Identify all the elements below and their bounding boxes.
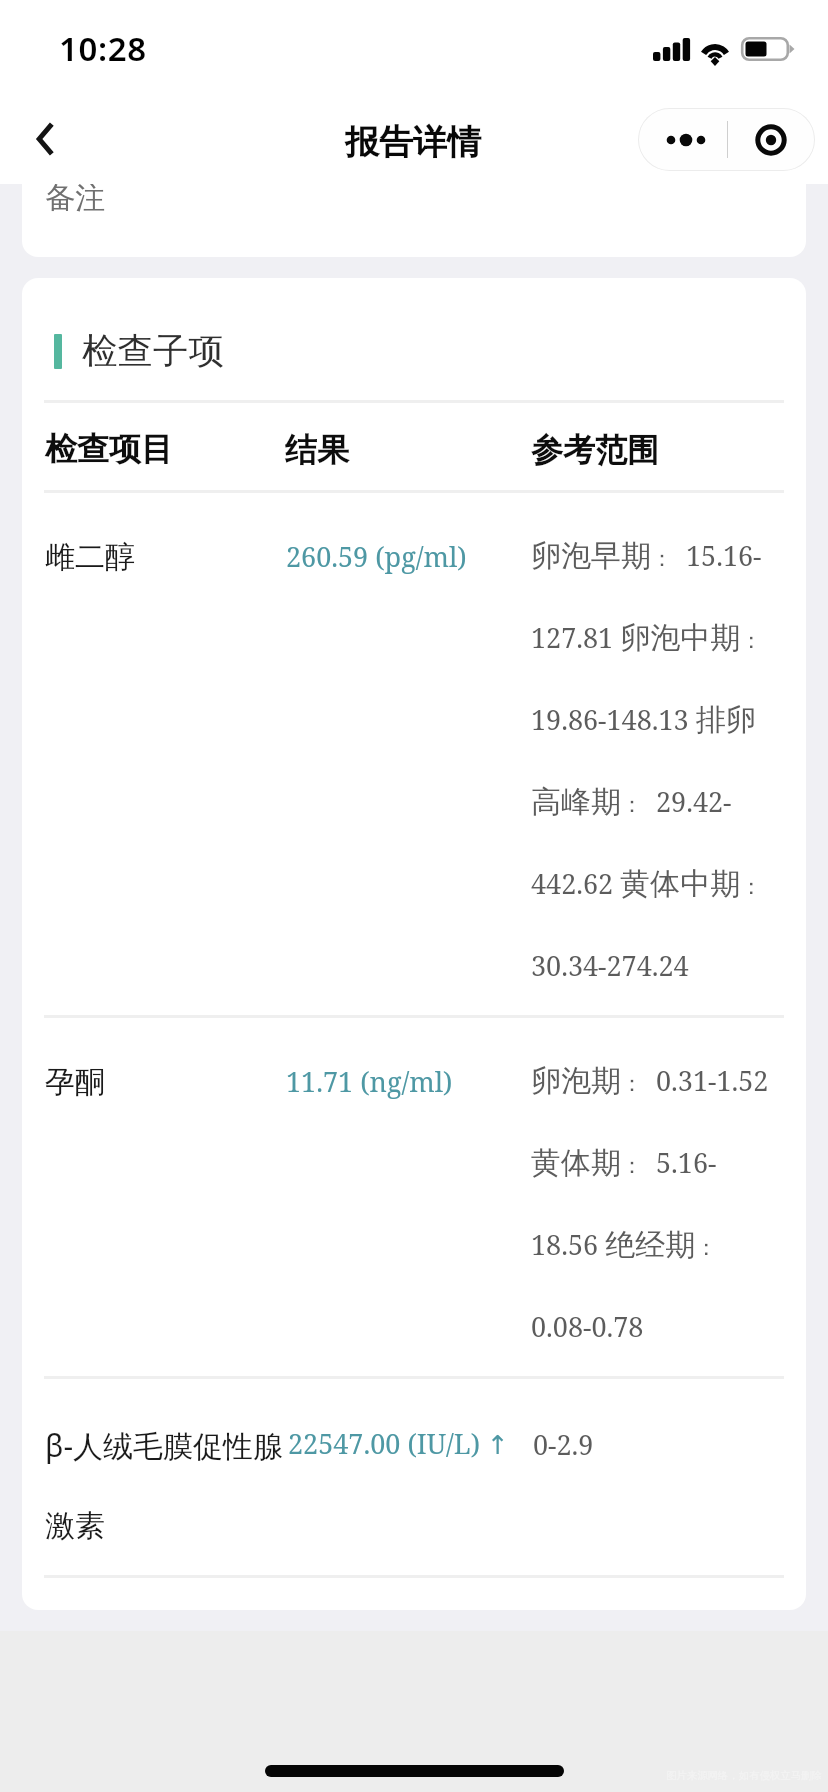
- button[interactable]: Back: [14, 99, 74, 159]
- staticText: 卵泡期：0.31-1.52: [531, 1062, 769, 1100]
- staticText: 0.08-0.78: [531, 1308, 644, 1345]
- staticText: 卵泡早期：15.16-: [531, 537, 762, 575]
- button[interactable]: More options: [638, 108, 728, 171]
- staticText: 孕酮: [45, 1063, 105, 1101]
- staticText: 黄体期：5.16-: [531, 1144, 717, 1182]
- staticText: 127.81 卵泡中期：: [531, 619, 776, 657]
- staticText: 260.59 (pg/ml): [286, 538, 467, 575]
- staticText: 18.56 绝经期：: [531, 1226, 731, 1264]
- staticText: 10:28: [59, 26, 147, 71]
- staticText: 参考范围: [531, 430, 659, 470]
- staticText: 22547.00 (IU/L) ↑: [288, 1425, 509, 1462]
- staticText: 结果: [285, 430, 349, 470]
- staticText: 检查子项: [82, 329, 224, 374]
- staticText: 19.86-148.13 排卵: [531, 701, 756, 739]
- staticText: 442.62 黄体中期：: [531, 865, 776, 903]
- staticText: 11.71 (ng/ml): [286, 1063, 453, 1100]
- staticText: 高峰期：29.42-: [531, 783, 732, 821]
- button[interactable]: Close mini program: [730, 108, 815, 171]
- staticText: β-人绒毛膜促性腺: [45, 1425, 284, 1466]
- staticText: 0-2.9: [533, 1426, 594, 1463]
- staticText: 激素: [45, 1507, 105, 1545]
- staticText: 检查项目: [45, 429, 173, 469]
- staticText: 雌二醇: [45, 538, 135, 576]
- staticText: 报告详情: [345, 121, 481, 164]
- staticText: 备注: [45, 179, 105, 217]
- staticText: 30.34-274.24: [531, 947, 689, 984]
